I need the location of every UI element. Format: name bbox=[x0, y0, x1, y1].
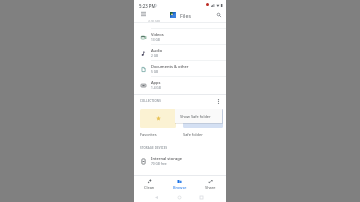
other: Home bbox=[178, 196, 181, 199]
button[interactable]: Open navigation menu bbox=[138, 8, 149, 19]
staticText: Internal storage bbox=[151, 156, 182, 161]
button[interactable]: Show Safe folder bbox=[175, 109, 222, 123]
staticText: Files bbox=[180, 12, 192, 19]
button[interactable]: Documents & other bbox=[134, 61, 226, 77]
button[interactable]: Audio bbox=[134, 45, 226, 61]
staticText: Share bbox=[205, 185, 216, 190]
other: Back bbox=[155, 196, 158, 199]
button[interactable] bbox=[140, 109, 176, 128]
staticText: 13 GB bbox=[151, 38, 160, 42]
button[interactable] bbox=[183, 109, 223, 128]
button[interactable]: More options bbox=[214, 97, 223, 106]
staticText: Apps bbox=[151, 80, 161, 85]
staticText: 4.05 MB bbox=[148, 20, 161, 24]
staticText: STORAGE DEVICES bbox=[140, 146, 168, 150]
staticText: COLLECTIONS bbox=[140, 99, 161, 103]
button[interactable]: Browse bbox=[164, 176, 195, 193]
staticText: Documents & other bbox=[151, 64, 189, 69]
staticText: Safe folder bbox=[183, 132, 203, 137]
staticText: 1.4 GB bbox=[151, 86, 161, 90]
button[interactable]: Search bbox=[213, 9, 224, 20]
staticText: 5 GB bbox=[151, 70, 159, 74]
staticText: 70 GB free bbox=[151, 162, 167, 166]
staticText: Audio bbox=[151, 48, 163, 53]
button[interactable]: Share bbox=[195, 176, 226, 193]
staticText: 2 GB bbox=[151, 54, 159, 58]
button[interactable]: Internal storage bbox=[134, 153, 226, 169]
staticText: Favorites bbox=[140, 132, 157, 137]
staticText: Browse bbox=[173, 185, 187, 190]
button[interactable]: Videos bbox=[134, 29, 226, 45]
staticText: Videos bbox=[151, 32, 164, 37]
button[interactable]: Clean bbox=[134, 176, 164, 193]
other: Recents bbox=[200, 196, 203, 199]
staticText: 5:23 PM bbox=[139, 3, 156, 9]
staticText: Clean bbox=[144, 185, 155, 190]
staticText: Show Safe folder bbox=[180, 114, 211, 119]
button[interactable]: Apps bbox=[134, 77, 226, 93]
